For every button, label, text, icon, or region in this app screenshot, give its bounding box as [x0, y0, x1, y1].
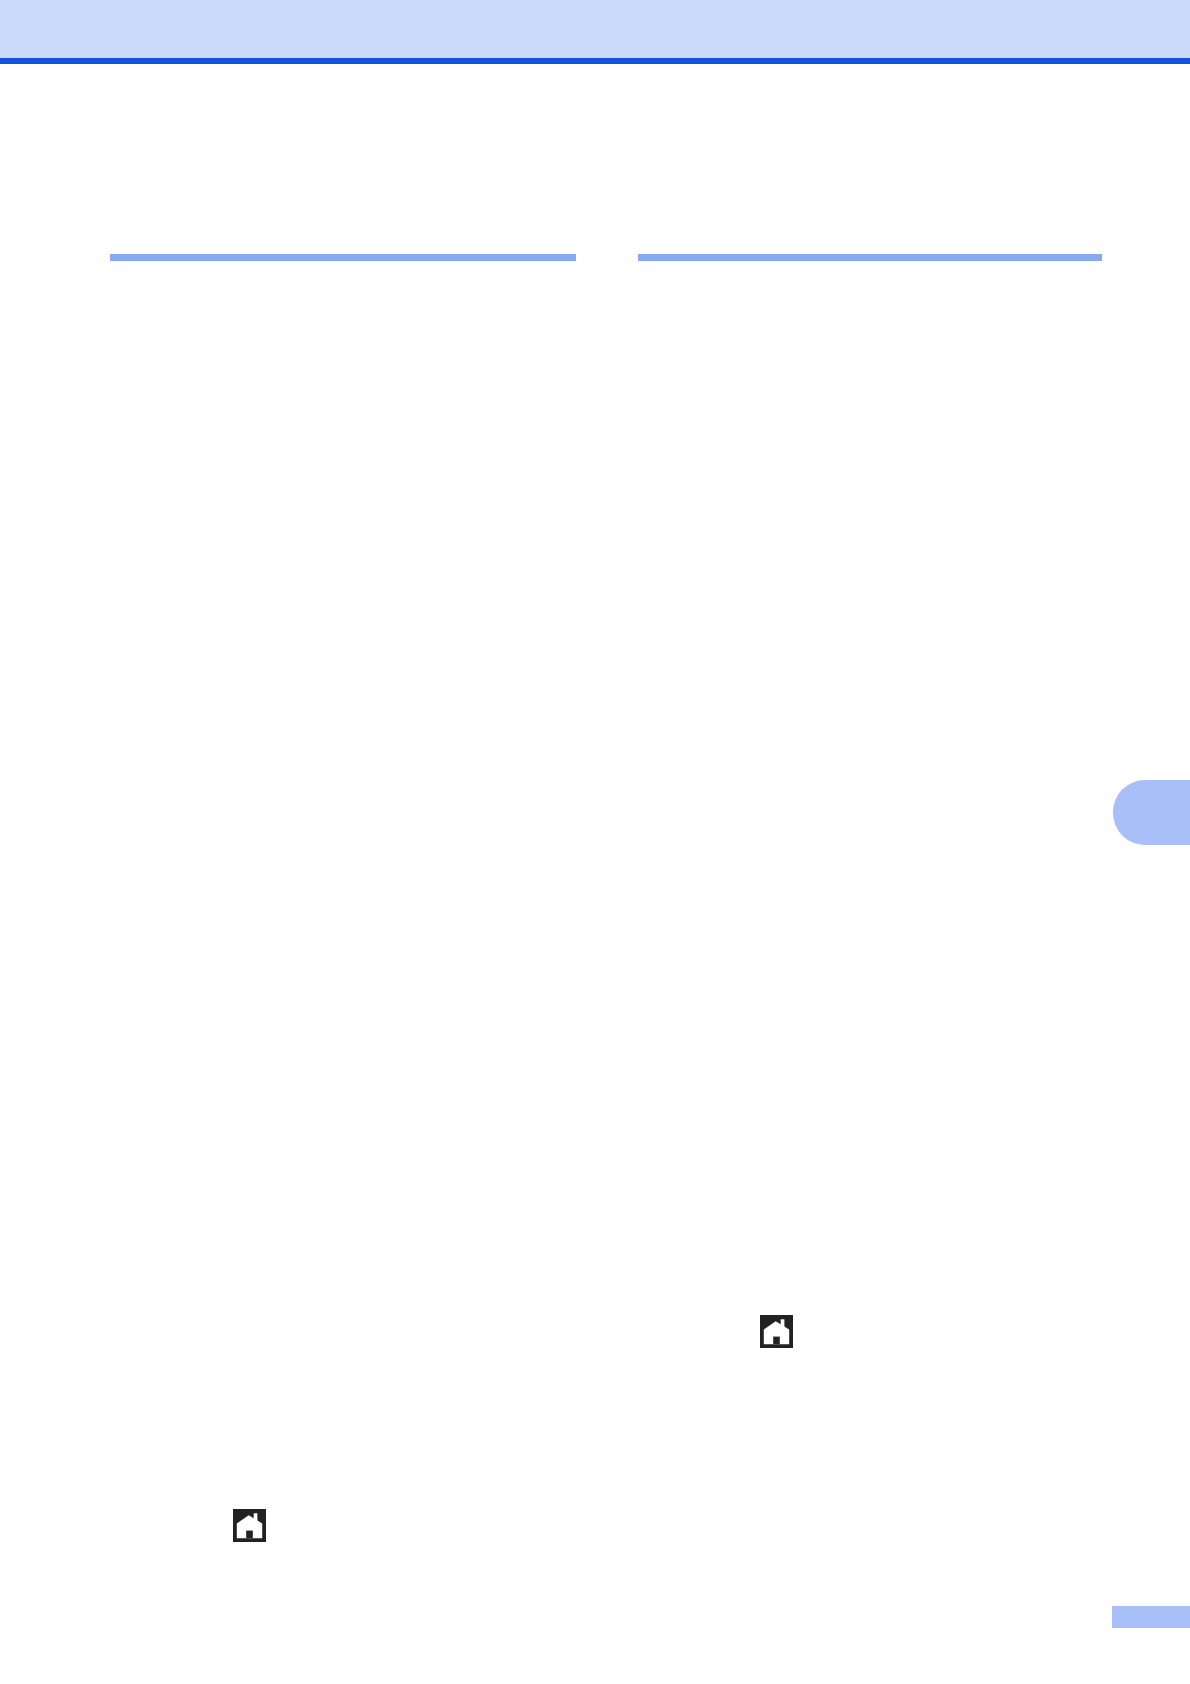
button[interactable]: Home	[760, 1315, 793, 1348]
button[interactable]: Section tab	[1113, 780, 1190, 845]
button[interactable]: Home	[233, 1509, 266, 1542]
